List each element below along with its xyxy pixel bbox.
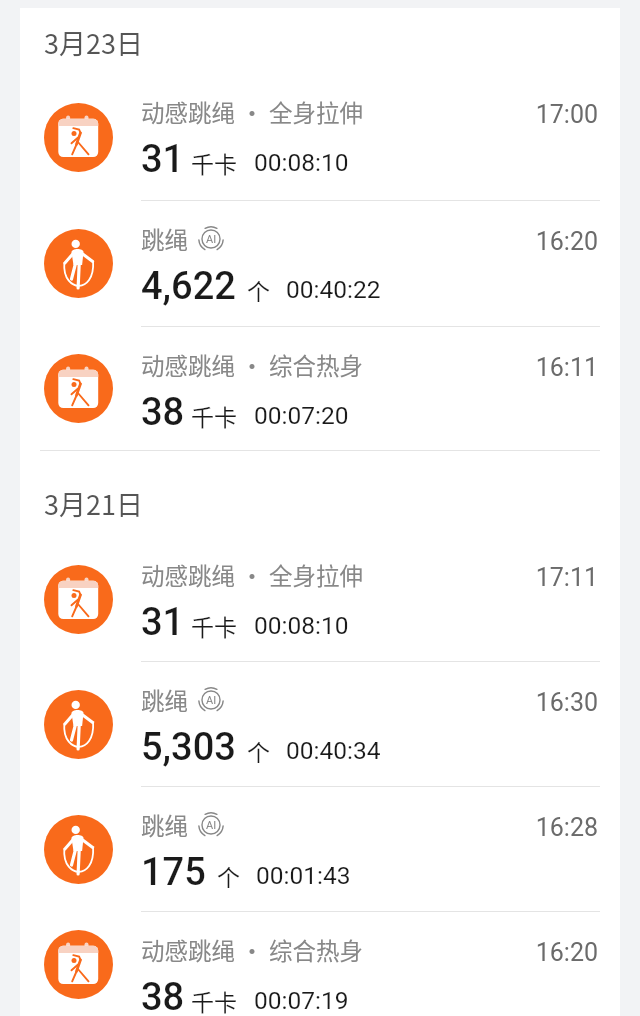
staticText: 个: [247, 273, 270, 306]
staticText: 动感跳绳 · 全身拉伸: [141, 558, 364, 592]
staticText: 跳绳: [141, 222, 188, 256]
button[interactable]: 动感跳绳 · 综合热身: [20, 327, 620, 450]
staticText: 16:20: [20, 938, 598, 967]
staticText: 动感跳绳 · 全身拉伸: [141, 95, 364, 129]
button[interactable]: 跳绳: [20, 787, 620, 911]
staticText: 动感跳绳 · 综合热身: [141, 348, 364, 382]
staticText: AI: [206, 233, 217, 246]
staticText: 千卡: [191, 399, 237, 432]
staticText: 16:28: [20, 813, 598, 842]
staticText: 17:11: [20, 563, 598, 592]
staticText: 17:00: [20, 100, 598, 129]
staticText: 千卡: [191, 609, 237, 642]
staticText: 千卡: [191, 146, 237, 179]
staticText: 00:08:10: [254, 148, 349, 177]
staticText: 动感跳绳 · 综合热身: [141, 933, 364, 967]
staticText: 16:11: [20, 353, 598, 382]
staticText: 跳绳: [141, 808, 188, 842]
staticText: 个: [217, 859, 240, 892]
staticText: 31: [141, 600, 185, 645]
staticText: AI: [206, 694, 217, 707]
staticText: 31: [141, 137, 185, 182]
staticText: 5,303: [141, 725, 236, 770]
staticText: 3月23日: [44, 23, 620, 62]
staticText: 千卡: [191, 984, 237, 1016]
staticText: 个: [247, 734, 270, 767]
staticText: 16:30: [20, 688, 598, 717]
button[interactable]: 动感跳绳 · 全身拉伸: [20, 74, 620, 200]
staticText: 38: [141, 975, 185, 1016]
button[interactable]: 动感跳绳 · 全身拉伸: [20, 537, 620, 661]
button[interactable]: 跳绳: [20, 662, 620, 786]
staticText: 00:08:10: [254, 611, 349, 640]
staticText: 00:01:43: [256, 861, 351, 890]
staticText: 4,622: [141, 264, 236, 309]
staticText: 00:40:22: [286, 275, 381, 304]
staticText: 00:40:34: [286, 736, 381, 765]
staticText: 00:07:20: [254, 401, 349, 430]
staticText: 38: [141, 390, 185, 435]
button[interactable]: 动感跳绳 · 综合热身: [20, 912, 620, 1016]
staticText: 跳绳: [141, 683, 188, 717]
staticText: 00:07:19: [254, 986, 349, 1015]
staticText: 175: [141, 850, 206, 895]
button[interactable]: 跳绳: [20, 201, 620, 326]
staticText: 16:20: [20, 227, 598, 256]
staticText: 3月21日: [44, 484, 620, 523]
staticText: AI: [206, 819, 217, 832]
